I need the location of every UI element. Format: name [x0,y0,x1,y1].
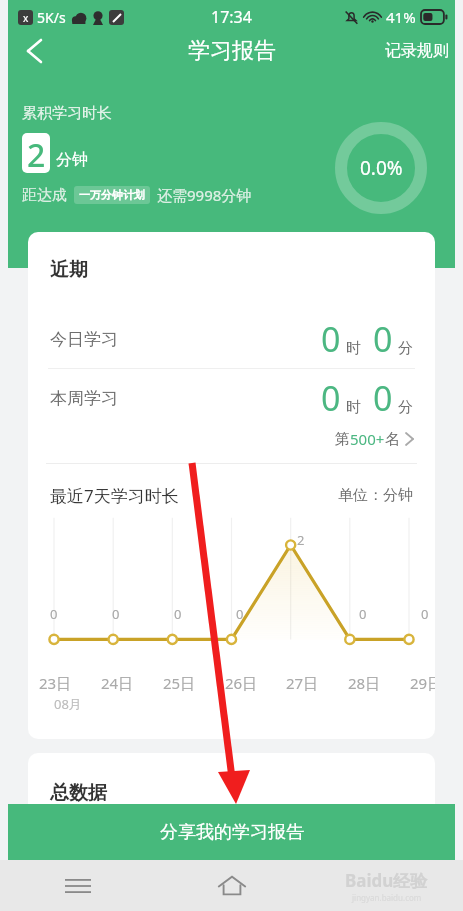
staticText: 28日 [348,673,381,693]
staticText: 0 [321,316,341,362]
staticText: 分享我的学习报告 [160,821,304,844]
button[interactable]: Home [155,860,309,911]
staticText: 一万分钟计划 [79,188,145,202]
staticText: 单位：分钟 [338,486,413,505]
staticText: 0 [373,316,393,362]
staticText: 总数据 [50,781,107,805]
staticText: 时 [346,339,361,358]
button[interactable]: Back [10,34,58,68]
staticText: 0 [321,375,341,421]
button[interactable]: 第 [28,429,413,449]
staticText: 累积学习时长 [22,104,112,123]
staticText: 500+ [350,429,385,449]
staticText: 0.0% [360,155,403,181]
staticText: 分钟 [56,150,88,170]
staticText: 2 [27,133,46,173]
staticText: 0 [373,375,393,421]
staticText: 名 [385,430,400,449]
staticText: 0 [421,605,429,623]
button[interactable]: 记录规则 [385,41,449,61]
staticText: 27日 [286,673,319,693]
staticText: 时 [346,398,361,417]
button[interactable]: Recent apps [0,860,155,911]
staticText: 0 [112,605,120,623]
staticText: 本周学习 [50,388,118,409]
staticText: Baidu经验 [345,869,428,892]
staticText: 第 [335,430,350,449]
staticText: 记录规则 [385,41,449,61]
staticText: 25日 [163,673,196,693]
staticText: 23日 [39,673,72,693]
staticText: 5K/s [37,8,66,27]
button[interactable]: 分享我的学习报告 [8,804,455,860]
staticText: 08月 [54,695,82,713]
staticText: 最近7天学习时长 [50,484,179,507]
staticText: 学习报告 [188,37,276,65]
staticText: x [23,11,29,25]
staticText: 26日 [225,673,258,693]
staticText: 距达成 [22,186,67,205]
staticText: 0 [174,605,182,623]
staticText: 24日 [101,673,134,693]
staticText: jingyan.baidu.com [352,892,422,903]
staticText: 29日 [410,673,435,693]
staticText: 0 [236,605,244,623]
staticText: 0 [359,605,367,623]
staticText: 近期 [50,258,88,282]
staticText: 还需9998分钟 [157,185,252,205]
staticText: 2 [297,531,305,549]
staticText: 0 [50,605,58,623]
staticText: 分 [398,339,413,358]
staticText: 41% [386,7,416,27]
staticText: 今日学习 [50,329,118,350]
staticText: 17:34 [211,6,252,28]
staticText: 分 [398,398,413,417]
button[interactable]: 一万分钟计划 [79,188,145,202]
